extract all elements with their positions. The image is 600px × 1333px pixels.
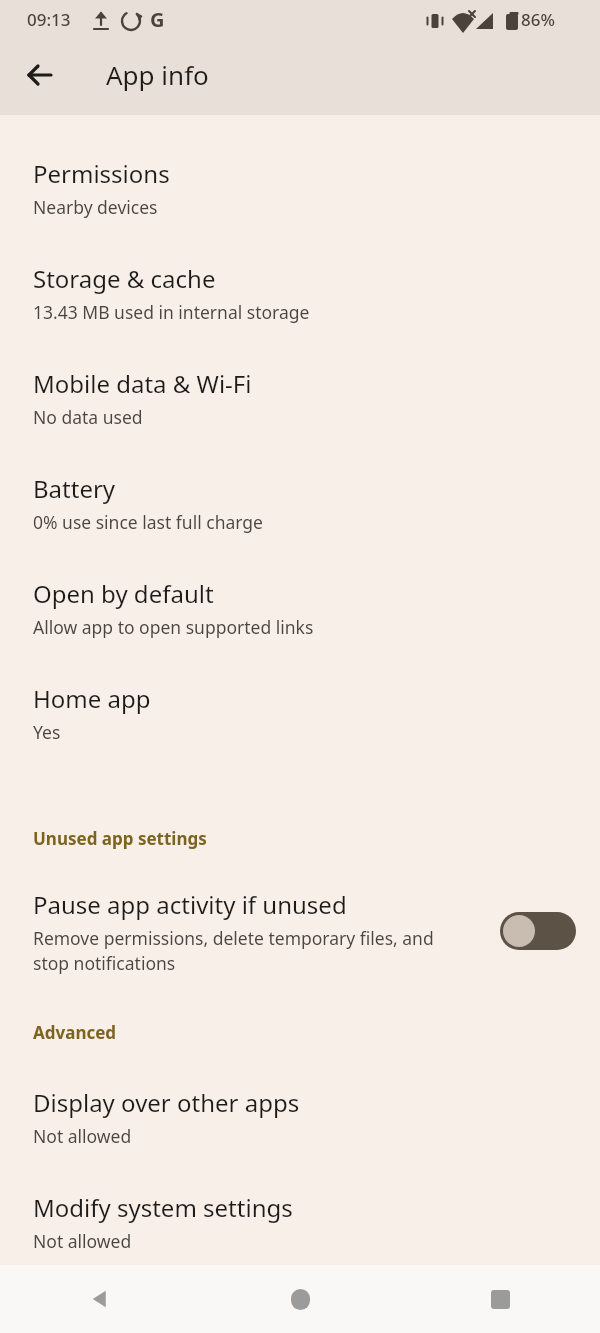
button[interactable]: Display over other apps xyxy=(0,1082,600,1187)
button[interactable]: Back xyxy=(14,49,66,101)
button[interactable]: Modify system settings xyxy=(0,1187,600,1265)
staticText: 13.43 MB used in internal storage xyxy=(33,300,310,324)
staticText: Not allowed xyxy=(33,1229,132,1253)
staticText: Nearby devices xyxy=(33,195,158,219)
staticText: No data used xyxy=(33,405,143,429)
staticText: Yes xyxy=(33,720,61,744)
staticText: Home app xyxy=(33,682,151,715)
staticText: G xyxy=(150,6,165,33)
staticText: Allow app to open supported links xyxy=(33,615,314,639)
staticText: Pause app activity if unused xyxy=(33,888,347,921)
staticText: Advanced xyxy=(33,1021,117,1044)
button[interactable]: Back xyxy=(0,1265,200,1333)
staticText: Mobile data & Wi-Fi xyxy=(33,367,252,400)
button[interactable]: Permissions xyxy=(0,153,600,258)
button[interactable]: Pause app activity toggle, off xyxy=(500,912,576,950)
button[interactable]: Home app xyxy=(0,678,600,783)
staticText: 09:13 xyxy=(27,8,71,31)
staticText: Not allowed xyxy=(33,1124,132,1148)
staticText: Storage & cache xyxy=(33,262,216,295)
staticText: Open by default xyxy=(33,577,214,610)
staticText: Unused app settings xyxy=(33,827,207,850)
button[interactable]: Mobile data & Wi-Fi xyxy=(0,363,600,468)
staticText: Display over other apps xyxy=(33,1086,300,1119)
button[interactable]: Pause app activity if unused xyxy=(0,888,600,975)
button[interactable]: Recent apps xyxy=(400,1265,600,1333)
button[interactable]: Open by default xyxy=(0,573,600,678)
staticText: 86% xyxy=(521,8,555,31)
staticText: App info xyxy=(106,57,209,92)
button[interactable]: Battery xyxy=(0,468,600,573)
staticText: Battery xyxy=(33,472,116,505)
staticText: Modify system settings xyxy=(33,1191,293,1224)
button[interactable]: Storage & cache xyxy=(0,258,600,363)
staticText: 0% use since last full charge xyxy=(33,510,263,534)
staticText: Permissions xyxy=(33,157,170,190)
staticText: Remove permissions, delete temporary fil… xyxy=(33,926,434,975)
button[interactable]: Home xyxy=(200,1265,400,1333)
